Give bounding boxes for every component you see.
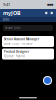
- button[interactable]: Notifications: [47, 12, 53, 14]
- button[interactable]: Search: [45, 12, 47, 14]
- staticText: 9:41: [3, 2, 10, 7]
- staticText: Search Jobs: [5, 26, 20, 30]
- staticText: Product Designer: [4, 50, 29, 54]
- button[interactable]: Product Designer: [2, 48, 54, 59]
- button[interactable]: Search Jobs: [3, 25, 53, 31]
- staticText: Jobs: [3, 18, 9, 21]
- staticText: Senior Account Manager: [4, 38, 39, 41]
- button[interactable]: Compose: [43, 76, 52, 85]
- staticText: myJOB: [3, 9, 21, 17]
- staticText: ●●●: [47, 3, 53, 6]
- staticText: Acme Corp · Remote: [4, 42, 33, 45]
- button[interactable]: Senior Account Manager: [2, 36, 54, 47]
- staticText: Globex · Hybrid: [4, 54, 25, 58]
